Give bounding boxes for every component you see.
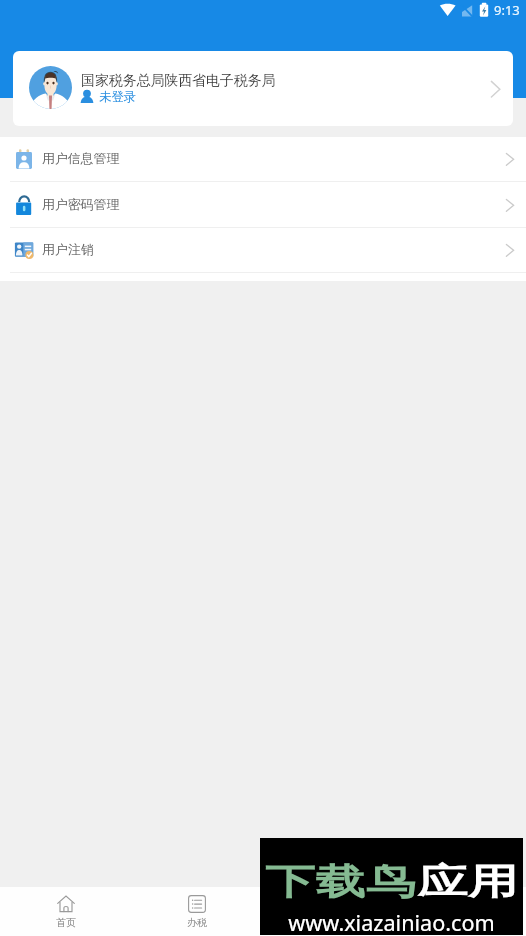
staticText: 9:13 bbox=[494, 1, 520, 19]
staticText: 用户信息管理 bbox=[42, 151, 120, 167]
button[interactable]: 用户信息管理 bbox=[0, 137, 526, 181]
button[interactable]: 用户注销 bbox=[0, 228, 526, 272]
button[interactable]: 国家税务总局陕西省电子税务局 bbox=[13, 51, 513, 126]
staticText: 应用 bbox=[418, 860, 519, 905]
staticText: 用户注销 bbox=[42, 242, 94, 258]
button[interactable]: 我的 bbox=[394, 887, 526, 936]
button[interactable]: 查询 bbox=[262, 887, 394, 936]
button[interactable]: 用户密码管理 bbox=[0, 182, 526, 227]
staticText: 查询 bbox=[318, 916, 338, 929]
staticText: 用户密码管理 bbox=[42, 197, 120, 213]
staticText: 国家税务总局陕西省电子税务局 bbox=[81, 72, 276, 90]
staticText: 办税 bbox=[187, 916, 207, 929]
staticText: www.xiazainiao.com bbox=[260, 908, 523, 936]
staticText: 下载鸟 bbox=[265, 860, 418, 905]
staticText: 未登录 bbox=[99, 89, 137, 105]
button[interactable]: 首页 bbox=[0, 887, 131, 936]
staticText: 我的 bbox=[450, 916, 470, 929]
staticText: 首页 bbox=[56, 916, 76, 929]
button[interactable]: 办税 bbox=[131, 887, 262, 936]
